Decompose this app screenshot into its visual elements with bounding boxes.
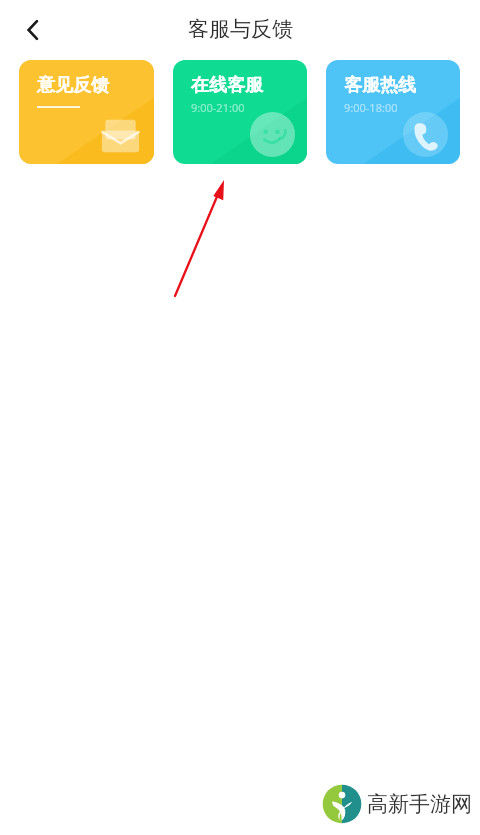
button[interactable]: 意见反馈 bbox=[19, 60, 154, 164]
staticText: 高新手游网 bbox=[367, 791, 472, 817]
staticText: 9:00-21:00 bbox=[191, 100, 245, 115]
staticText: 意见反馈 bbox=[37, 74, 109, 97]
staticText: 客服热线 bbox=[344, 74, 416, 97]
button[interactable]: 在线客服 bbox=[173, 60, 307, 164]
staticText: 在线客服 bbox=[191, 74, 263, 97]
button[interactable]: 客服热线 bbox=[326, 60, 460, 164]
button[interactable]: Back bbox=[12, 9, 54, 51]
staticText: 9:00-18:00 bbox=[344, 100, 398, 115]
staticText: 客服与反馈 bbox=[188, 16, 293, 42]
